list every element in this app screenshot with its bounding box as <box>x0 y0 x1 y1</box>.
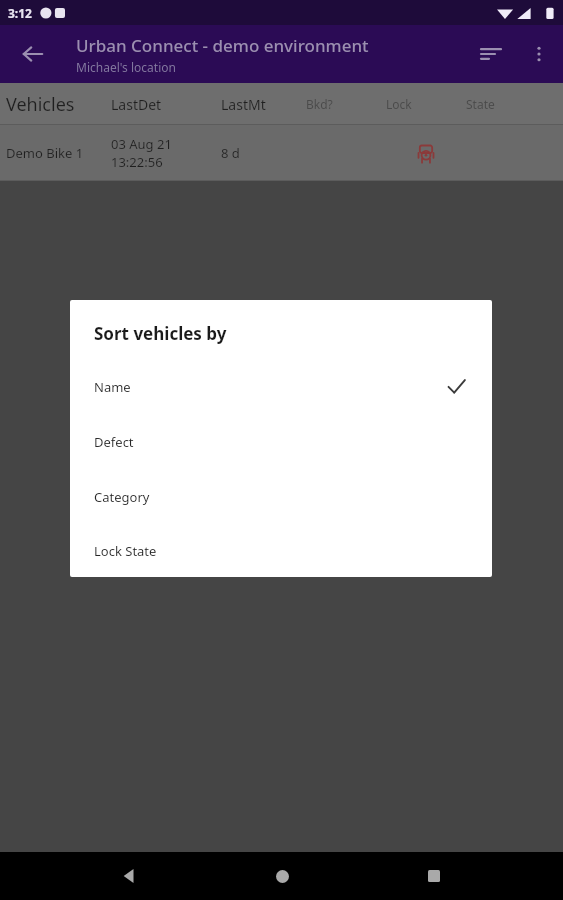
staticText: Defect <box>94 433 134 451</box>
staticText: Sort vehicles by <box>94 322 227 345</box>
button[interactable]: More options <box>515 30 563 78</box>
staticText: Demo Bike 1 <box>6 144 111 162</box>
staticText: Lock State <box>94 542 157 560</box>
button[interactable]: Back <box>105 852 153 900</box>
staticText: Michael's location <box>76 59 176 75</box>
staticText: 8 d <box>221 144 306 162</box>
button[interactable]: Defect <box>70 414 492 469</box>
staticText: 13:22:56 <box>111 153 163 171</box>
button[interactable]: Vehicles <box>6 92 111 117</box>
button[interactable]: Demo Bike 1 <box>0 125 563 181</box>
button[interactable]: Sort <box>467 30 515 78</box>
staticText: 03 Aug 21 <box>111 135 172 153</box>
staticText: Name <box>94 378 131 396</box>
button[interactable]: Name <box>70 359 492 414</box>
button[interactable]: Lock <box>386 96 466 112</box>
button[interactable]: LastMt <box>221 95 306 114</box>
button[interactable]: Lock State <box>70 524 492 577</box>
staticText: Urban Connect - demo environment <box>76 34 369 57</box>
button[interactable]: State <box>466 96 495 112</box>
staticText: Category <box>94 488 150 506</box>
button[interactable]: Recents <box>410 852 458 900</box>
other: Lock state <box>415 142 437 164</box>
button[interactable]: Bkd? <box>306 96 386 112</box>
staticText: 3:12 <box>8 5 32 21</box>
button[interactable]: LastDet <box>111 95 221 114</box>
button[interactable]: Back <box>10 31 56 77</box>
other: Selected <box>447 377 466 396</box>
button[interactable]: Category <box>70 469 492 524</box>
button[interactable]: Home <box>258 852 306 900</box>
